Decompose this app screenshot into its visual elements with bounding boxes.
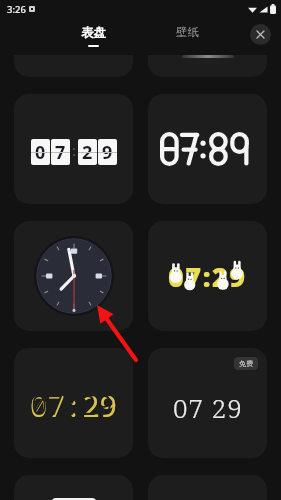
button[interactable] xyxy=(148,94,267,204)
button[interactable]: 壁纸 xyxy=(166,23,209,41)
button[interactable] xyxy=(14,221,133,331)
staticText: 壁纸 xyxy=(176,25,199,39)
staticText: 07:29 xyxy=(30,386,118,425)
staticText: 07:29 xyxy=(31,386,113,423)
button[interactable]: 07:29 xyxy=(148,221,267,331)
button[interactable]: 07:29 xyxy=(14,348,133,458)
staticText: 7 xyxy=(55,140,66,165)
button[interactable]: 表盘 xyxy=(71,23,116,49)
button[interactable]: 07 29 xyxy=(148,348,267,458)
staticText: 3:26 xyxy=(7,3,26,16)
staticText: 9 xyxy=(102,140,113,165)
staticText: 免费 xyxy=(239,359,253,368)
button[interactable]: 07 xyxy=(14,475,133,500)
staticText: 07:29 xyxy=(168,258,247,295)
staticText: 07 29 xyxy=(173,390,243,425)
button[interactable] xyxy=(148,55,267,77)
button[interactable]: 关闭 xyxy=(250,24,271,45)
button[interactable]: 0 xyxy=(14,94,133,204)
staticText: 0 xyxy=(35,140,46,165)
staticText: 2 xyxy=(82,140,93,165)
staticText: 表盘 xyxy=(81,25,106,41)
